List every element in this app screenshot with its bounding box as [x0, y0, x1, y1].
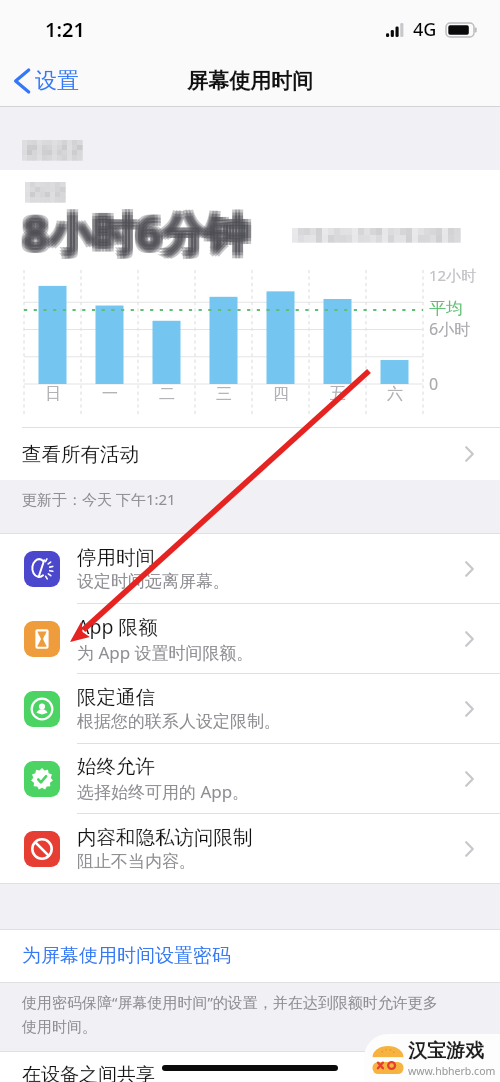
staticText: 日 — [45, 384, 61, 404]
staticText: 6小时 — [429, 318, 471, 340]
staticText: 选择始终可用的 App。 — [77, 780, 250, 803]
staticText: 8小时6分钟 — [20, 200, 247, 260]
staticText: 汉宝游戏 — [408, 1039, 484, 1063]
staticText: 在设备之间共享 — [22, 1063, 155, 1082]
staticText: 使用密码保障“屏幕使用时间”的设置，并在达到限额时允许更多 使用时间。 — [22, 992, 438, 1036]
staticText: 4G — [413, 17, 437, 42]
staticText: 始终允许 — [77, 754, 155, 779]
staticText: 更新于：今天 下午1:21 — [22, 489, 176, 509]
button[interactable]: 限定通信 — [0, 674, 500, 744]
staticText: 阻止不当内容。 — [77, 851, 196, 872]
staticText: 8小时6分钟 — [26, 200, 253, 260]
staticText: 为 App 设置时间限额。 — [77, 641, 254, 664]
staticText: 三 — [216, 384, 232, 404]
staticText: 五 — [330, 384, 346, 404]
staticText: 8小时6分钟 — [23, 200, 250, 260]
button[interactable]: 查看所有活动 — [0, 428, 500, 480]
staticText: App 限额 — [77, 613, 158, 640]
staticText: 平均 — [429, 298, 463, 319]
staticText: 8小时6分钟 — [20, 203, 247, 263]
staticText: 内容和隐私访问限制 — [77, 825, 253, 850]
staticText: 8小时6分钟 — [20, 206, 247, 266]
staticText: 查看所有活动 — [22, 442, 139, 467]
staticText: 限定通信 — [77, 685, 155, 710]
staticText: 四 — [273, 384, 289, 404]
staticText: 六 — [387, 384, 403, 404]
button[interactable]: 始终允许 — [0, 744, 500, 814]
button[interactable]: 内容和隐私访问限制 — [0, 814, 500, 883]
staticText: 8小时6分钟 — [23, 203, 250, 263]
staticText: 二 — [159, 384, 175, 404]
staticText: 一 — [102, 384, 118, 404]
staticText: 8小时6分钟 — [26, 206, 253, 266]
staticText: 8小时6分钟 — [23, 206, 250, 266]
staticText: www.hbherb.com — [408, 1064, 496, 1078]
staticText: 屏幕使用时间 — [187, 68, 313, 94]
button[interactable]: App 限额 — [0, 604, 500, 674]
staticText: 设定时间远离屏幕。 — [77, 571, 230, 592]
staticText: 为屏幕使用时间设置密码 — [22, 944, 231, 968]
button[interactable]: 设置 — [9, 61, 84, 101]
staticText: 根据您的联系人设定限制。 — [77, 711, 281, 732]
staticText: 8小时6分钟 — [26, 203, 253, 263]
staticText: 0 — [429, 373, 439, 395]
button[interactable]: 为屏幕使用时间设置密码 — [0, 930, 500, 982]
staticText: 停用时间 — [77, 545, 155, 570]
staticText: 设置 — [35, 67, 79, 95]
staticText: 1:21 — [45, 16, 85, 43]
button[interactable]: 停用时间 — [0, 534, 500, 604]
staticText: 12小时 — [429, 265, 477, 285]
